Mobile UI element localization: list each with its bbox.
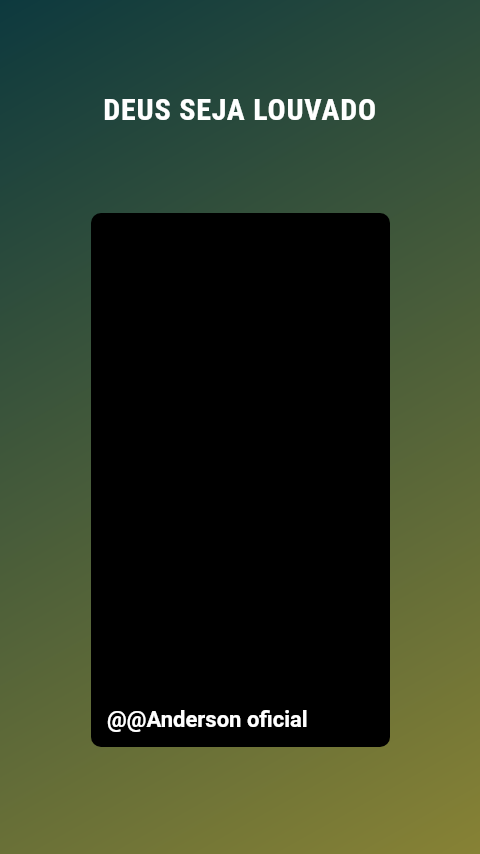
button[interactable]: @@Anderson oficial (107, 707, 308, 733)
staticText: DEUS SEJA LOUVADO (0, 92, 480, 127)
button[interactable]: Play video (91, 213, 390, 747)
